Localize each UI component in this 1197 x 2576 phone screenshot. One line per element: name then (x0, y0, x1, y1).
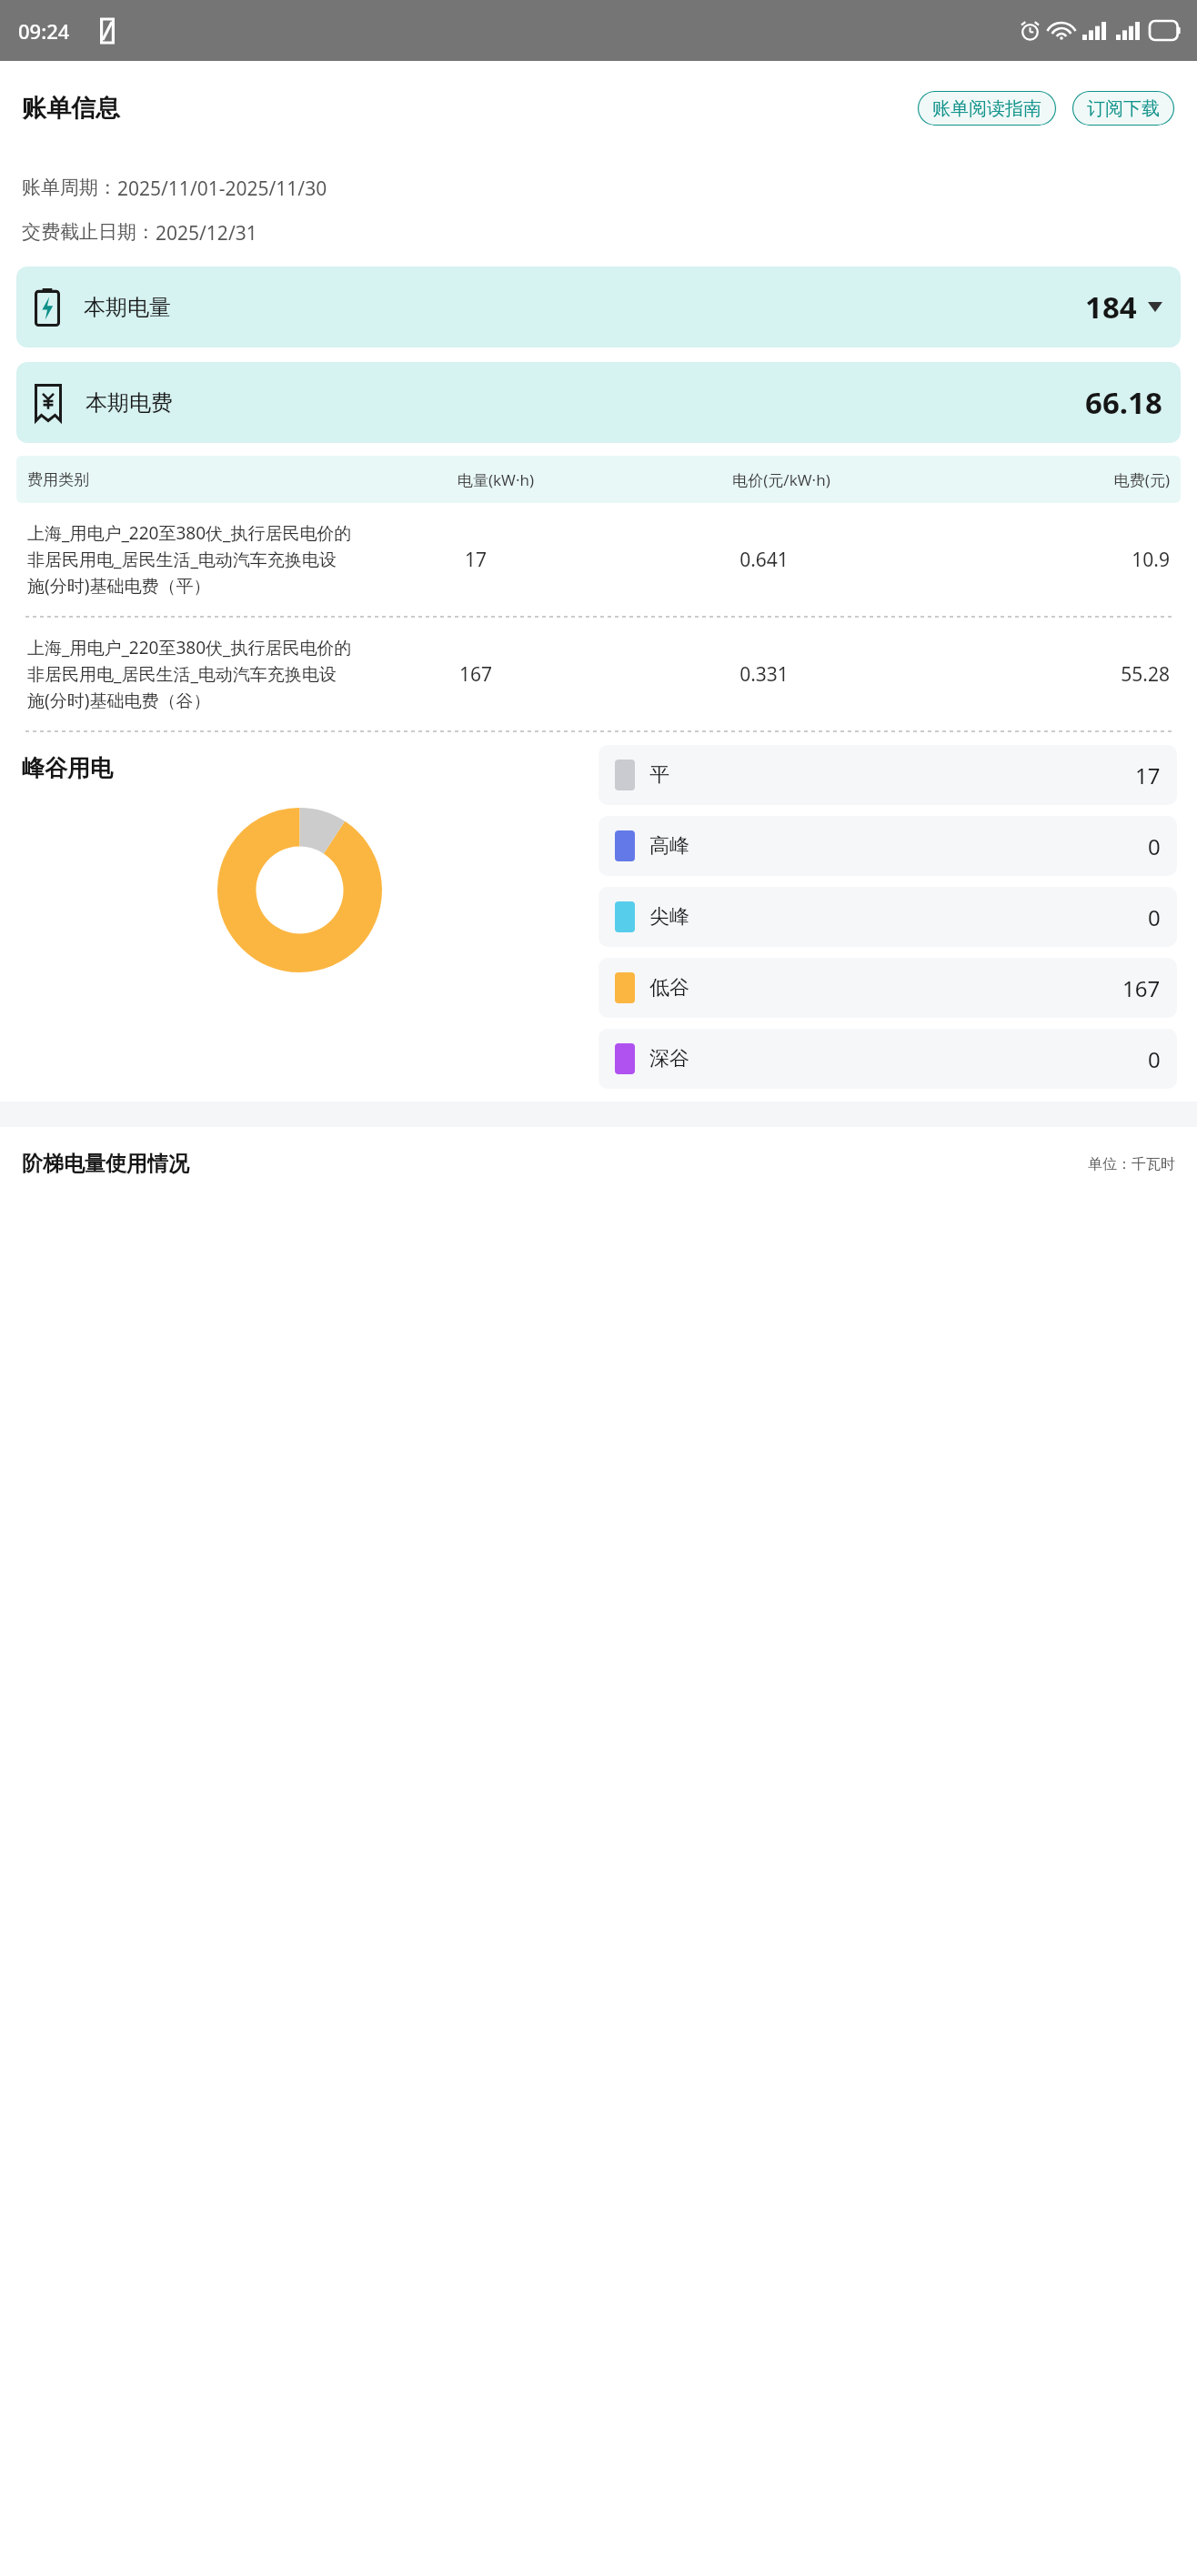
staticText: 09:24 (18, 17, 70, 45)
staticText: 账单周期： (22, 176, 117, 199)
staticText: 订阅下载 (1087, 97, 1160, 120)
staticText: 184 (1085, 287, 1137, 327)
staticText: 10.9 (930, 547, 1170, 573)
staticText: 0 (1148, 902, 1161, 932)
staticText: 上海_用电户_220至380伏_执行居民电价的非居民用电_居民生活_电动汽车充换… (27, 636, 353, 712)
staticText: 2025/12/31 (156, 220, 257, 247)
staticText: 17 (1135, 760, 1161, 790)
staticText: 0 (1148, 831, 1161, 861)
button[interactable]: 平 (598, 745, 1177, 805)
staticText: 交费截止日期： (22, 220, 156, 244)
staticText: 账单阅读指南 (932, 97, 1041, 120)
staticText: 峰谷用电 (22, 754, 113, 782)
staticText: 0.641 (598, 547, 930, 573)
staticText: 0 (1148, 1044, 1161, 1074)
button[interactable]: 本期电费 (16, 362, 1181, 443)
button[interactable]: 订阅下载 (1071, 91, 1175, 126)
staticText: 单位：千瓦时 (1088, 1155, 1175, 1173)
staticText: 低谷 (649, 975, 689, 1001)
staticText: 2025/11/01-2025/11/30 (117, 176, 327, 202)
staticText: 电价(元/kW·h) (621, 469, 941, 490)
button[interactable]: 账单阅读指南 (917, 91, 1057, 126)
staticText: 66.18 (1085, 382, 1162, 423)
staticText: 尖峰 (649, 904, 689, 930)
staticText: 电费(元) (941, 469, 1170, 490)
staticText: 上海_用电户_220至380伏_执行居民电价的非居民用电_居民生活_电动汽车充换… (27, 521, 353, 598)
staticText: 0.331 (598, 661, 930, 688)
staticText: 167 (353, 661, 598, 688)
staticText: 高峰 (649, 833, 689, 859)
staticText: 电量(kW·h) (370, 469, 621, 490)
staticText: 本期电量 (84, 294, 171, 321)
staticText: 55.28 (930, 661, 1170, 688)
button[interactable]: 低谷 (598, 958, 1177, 1018)
staticText: 本期电费 (85, 389, 173, 417)
staticText: 深谷 (649, 1046, 689, 1072)
button[interactable]: 尖峰 (598, 887, 1177, 947)
button[interactable]: 本期电量 (16, 267, 1181, 347)
staticText: 167 (1122, 973, 1161, 1003)
staticText: 账单信息 (22, 93, 120, 124)
staticText: 费用类别 (27, 470, 370, 489)
staticText: 平 (649, 762, 669, 788)
staticText: 17 (353, 547, 598, 573)
staticText: 阶梯电量使用情况 (22, 1151, 189, 1177)
button[interactable]: 深谷 (598, 1029, 1177, 1089)
button[interactable]: 高峰 (598, 816, 1177, 876)
